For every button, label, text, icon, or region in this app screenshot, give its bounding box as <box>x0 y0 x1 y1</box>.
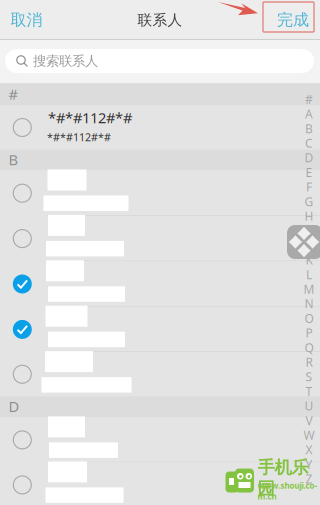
button[interactable]: Section index <box>301 92 317 486</box>
staticText: M <box>303 281 314 297</box>
staticText: K <box>305 252 312 268</box>
staticText: H <box>304 208 313 224</box>
staticText: # <box>8 84 17 104</box>
staticText: J <box>307 237 310 253</box>
staticText: A <box>305 106 313 122</box>
staticText: U <box>304 398 313 414</box>
staticText: *#*#112#*# <box>48 108 132 127</box>
button[interactable] <box>0 216 320 261</box>
staticText: S <box>305 369 312 385</box>
staticText: Q <box>304 339 313 355</box>
button[interactable]: 搜索联系人 <box>5 49 314 73</box>
staticText: # <box>305 91 313 107</box>
button[interactable] <box>0 417 320 462</box>
staticText: B <box>305 120 313 136</box>
staticText: 手机乐园 <box>257 457 308 499</box>
staticText: Z <box>305 471 312 487</box>
staticText: D <box>304 150 313 166</box>
button[interactable] <box>0 307 320 352</box>
staticText: I <box>307 223 311 239</box>
button[interactable]: 完成 <box>268 0 318 40</box>
staticText: 搜索联系人 <box>33 53 98 69</box>
button[interactable] <box>0 261 320 307</box>
staticText: D <box>8 397 19 416</box>
staticText: V <box>305 412 312 428</box>
staticText: *#*#112#*# <box>47 130 111 144</box>
staticText: E <box>305 164 312 180</box>
staticText: X <box>305 442 312 458</box>
staticText: F <box>306 179 312 195</box>
staticText: W <box>303 427 314 443</box>
staticText: T <box>305 383 312 399</box>
button[interactable] <box>0 170 320 216</box>
staticText: P <box>305 325 312 341</box>
staticText: 取消 <box>10 10 42 30</box>
button[interactable]: AssistiveTouch <box>287 225 320 259</box>
staticText: B <box>8 150 18 169</box>
staticText: C <box>305 135 313 151</box>
staticText: R <box>305 354 312 370</box>
button[interactable] <box>0 462 320 505</box>
staticText: 联系人 <box>137 11 182 29</box>
staticText: Y <box>305 456 312 472</box>
button[interactable]: 取消 <box>0 0 53 40</box>
staticText: 完成 <box>277 10 309 30</box>
staticText: www.shouji.com.cn <box>257 480 317 502</box>
staticText: L <box>306 266 312 282</box>
staticText: O <box>304 310 313 326</box>
staticText: G <box>304 193 313 209</box>
button[interactable]: *#*#112#*# <box>0 105 320 149</box>
staticText: N <box>304 296 313 312</box>
button[interactable] <box>0 352 320 396</box>
